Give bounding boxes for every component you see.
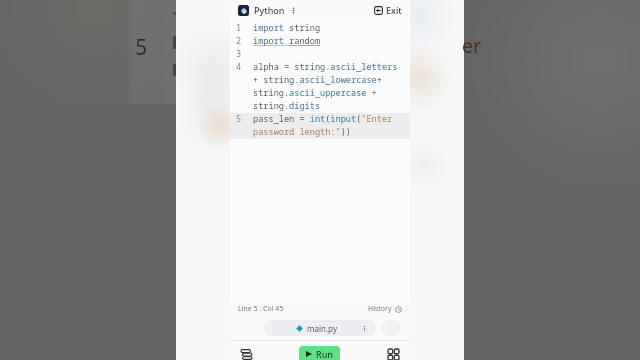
- button[interactable]: Files: [240, 348, 253, 360]
- button[interactable]: Run: [299, 346, 340, 360]
- staticText: Run: [316, 348, 333, 360]
- staticText: 2: [236, 35, 242, 47]
- button[interactable]: Apps: [387, 348, 400, 360]
- button[interactable]: More options: [289, 6, 298, 15]
- staticText: er: [462, 33, 481, 59]
- staticText: 5: [135, 33, 148, 62]
- staticText: + string.ascii_lowercase+: [253, 74, 382, 86]
- staticText: Exit: [386, 4, 402, 16]
- staticText: 5: [236, 113, 242, 125]
- staticText: string.digits: [253, 100, 321, 112]
- staticText: import random: [253, 35, 321, 47]
- staticText: password length:")): [253, 126, 351, 138]
- staticText: pass_len = int(input("Enter: [253, 113, 393, 125]
- button[interactable]: Python: [238, 4, 285, 16]
- button[interactable]: main.py: [264, 320, 376, 336]
- staticText: alpha = string.ascii_letters: [253, 61, 398, 73]
- staticText: History: [368, 304, 392, 314]
- staticText: 4: [236, 61, 242, 73]
- staticText: import string: [253, 22, 321, 34]
- staticText: main.py: [307, 323, 337, 334]
- staticText: 3: [236, 48, 242, 60]
- button[interactable]: Add tab: [381, 320, 401, 336]
- staticText: Python: [254, 4, 285, 16]
- staticText: string.ascii_uppercase +: [253, 87, 377, 99]
- button[interactable]: History: [368, 304, 402, 314]
- staticText: 1: [236, 22, 242, 34]
- button[interactable]: Exit: [374, 4, 402, 16]
- staticText: Line 5 : Col 45: [238, 304, 284, 314]
